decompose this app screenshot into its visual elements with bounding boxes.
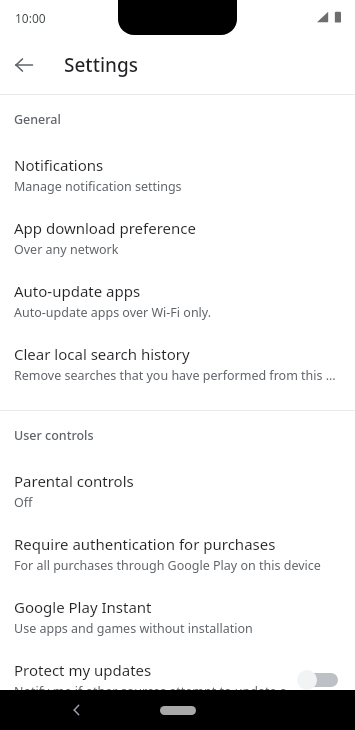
- staticText: Auto-update apps over Wi-Fi only.: [14, 304, 212, 321]
- staticText: Settings: [64, 52, 138, 78]
- staticText: Parental controls: [14, 471, 134, 491]
- staticText: User controls: [14, 427, 94, 444]
- staticText: 10:00: [15, 10, 46, 26]
- button[interactable]: Auto-update apps: [0, 269, 355, 332]
- button[interactable]: Back: [4, 45, 44, 85]
- staticText: Notify me if other sources attempt to up…: [14, 683, 297, 700]
- button[interactable]: Parental controls: [0, 459, 355, 522]
- staticText: Notifications: [14, 155, 104, 175]
- staticText: Use apps and games without installation: [14, 620, 253, 637]
- staticText: Auto-update apps: [14, 281, 141, 301]
- staticText: Over any network: [14, 241, 119, 258]
- staticText: General: [14, 111, 61, 128]
- staticText: Clear local search history: [14, 344, 190, 364]
- button[interactable]: Protect my updates toggle: [297, 666, 341, 694]
- staticText: Off: [14, 494, 33, 511]
- staticText: For all purchases through Google Play on…: [14, 557, 321, 574]
- staticText: Manage notification settings: [14, 178, 182, 195]
- button[interactable]: Clear local search history: [0, 332, 355, 395]
- button[interactable]: Google Play Instant: [0, 585, 355, 648]
- staticText: Remove searches that you have performed …: [14, 367, 341, 384]
- staticText: Protect my updates: [14, 660, 152, 680]
- button[interactable]: Notifications: [0, 143, 355, 206]
- staticText: Google Play Instant: [14, 597, 152, 617]
- button[interactable]: Back: [57, 690, 97, 730]
- button[interactable]: Require authentication for purchases: [0, 522, 355, 585]
- staticText: Require authentication for purchases: [14, 534, 276, 554]
- button[interactable]: App download preference: [0, 206, 355, 269]
- staticText: App download preference: [14, 218, 196, 238]
- button[interactable]: Protect my updates: [0, 648, 355, 711]
- button[interactable]: Home: [160, 706, 196, 715]
